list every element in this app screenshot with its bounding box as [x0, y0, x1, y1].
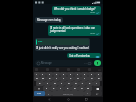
staticText: s [47, 82, 49, 85]
staticText: x [53, 87, 55, 90]
staticText: z [46, 87, 48, 90]
staticText: p [98, 77, 100, 80]
button[interactable]: a [36, 81, 44, 86]
staticText: f [61, 82, 62, 85]
staticText: 1 [36, 73, 38, 76]
button[interactable]: 0 [95, 72, 102, 76]
staticText: k [89, 82, 91, 85]
staticText: 9 [91, 73, 93, 76]
button[interactable]: 8 [81, 72, 88, 76]
button[interactable]: q [34, 76, 40, 81]
staticText: Got off yesterday [69, 54, 90, 57]
staticText: English (UK) [63, 93, 74, 95]
button[interactable]: l [93, 81, 100, 86]
button[interactable]: 9 [88, 72, 95, 76]
button[interactable]: 5 [60, 72, 67, 76]
button[interactable]: o [88, 76, 95, 81]
staticText: u [77, 77, 79, 80]
staticText: h [75, 82, 77, 85]
button[interactable]: Back [48, 98, 51, 101]
staticText: b [74, 87, 76, 90]
staticText: Ill note in all task questions i also ca… [50, 26, 99, 32]
button[interactable]: Message [35, 60, 93, 66]
staticText: 5 [63, 73, 65, 76]
button[interactable]: Symbols [34, 91, 45, 96]
staticText: ?123 [37, 92, 42, 95]
button[interactable]: Backspace [92, 86, 102, 91]
staticText: w [42, 77, 44, 80]
button[interactable]: Home [67, 98, 70, 101]
button[interactable]: s [44, 81, 51, 86]
staticText: 0 [98, 73, 100, 76]
button[interactable]: d [51, 81, 58, 86]
button[interactable]: 6 [67, 72, 74, 76]
button[interactable]: Ill note in all task questions i also ca… [48, 25, 101, 36]
button[interactable]: h [72, 81, 79, 86]
button[interactable]: Send voice message [94, 60, 101, 66]
button[interactable]: v [64, 86, 71, 91]
staticText: Ill just didn't really see you asking I … [36, 46, 89, 50]
button[interactable]: g [65, 81, 72, 86]
button[interactable]: Got off yesterday [67, 53, 101, 58]
button[interactable]: 4 [53, 72, 60, 76]
staticText: e [49, 77, 51, 80]
button[interactable]: Shift [34, 86, 43, 91]
button[interactable]: j [79, 81, 86, 86]
staticText: 12:04 [90, 32, 95, 35]
button[interactable]: c [57, 86, 64, 91]
staticText: 12:04 [90, 11, 95, 14]
staticText: 6 [70, 73, 72, 76]
button[interactable]: w [40, 76, 46, 81]
staticText: 8 [84, 73, 86, 76]
staticText: g [68, 82, 70, 85]
staticText: 4 [56, 73, 58, 76]
button[interactable]: y [67, 76, 74, 81]
button[interactable]: t [60, 76, 67, 81]
button[interactable]: 2 [40, 72, 46, 76]
button[interactable]: . [84, 91, 91, 96]
button[interactable]: i [81, 76, 88, 81]
button[interactable]: f [58, 81, 65, 86]
staticText: t [63, 77, 64, 80]
staticText: Who did you think i would dodge? [54, 7, 96, 11]
button[interactable]: 1 [34, 72, 40, 76]
staticText: a [39, 82, 41, 85]
staticText: Sam [38, 40, 43, 43]
staticText: , [48, 92, 49, 95]
staticText: l [96, 82, 97, 85]
staticText: 2 [42, 73, 44, 76]
button[interactable]: 3 [46, 72, 53, 76]
staticText: q [36, 77, 38, 80]
button[interactable]: e [46, 76, 53, 81]
button[interactable]: b [71, 86, 78, 91]
button[interactable]: Enter [91, 91, 102, 96]
button[interactable]: Who did you think i would dodge? [52, 6, 101, 15]
button[interactable]: u [74, 76, 81, 81]
button[interactable]: z [43, 86, 50, 91]
staticText: d [54, 82, 56, 85]
staticText: m [87, 87, 90, 90]
button[interactable]: Recent apps [85, 98, 88, 101]
button[interactable]: Message ram today [35, 17, 63, 23]
staticText: . [87, 92, 88, 95]
button[interactable]: k [86, 81, 93, 86]
button[interactable]: , [45, 91, 52, 96]
button[interactable]: Sam [35, 38, 90, 51]
button[interactable]: p [95, 76, 102, 81]
button[interactable]: r [53, 76, 60, 81]
button[interactable]: x [50, 86, 57, 91]
button[interactable]: Space [52, 91, 84, 96]
button[interactable]: 7 [74, 72, 81, 76]
button[interactable]: m [85, 86, 92, 91]
button[interactable]: n [78, 86, 85, 91]
staticText: 7 [77, 73, 79, 76]
staticText: n [81, 87, 83, 90]
